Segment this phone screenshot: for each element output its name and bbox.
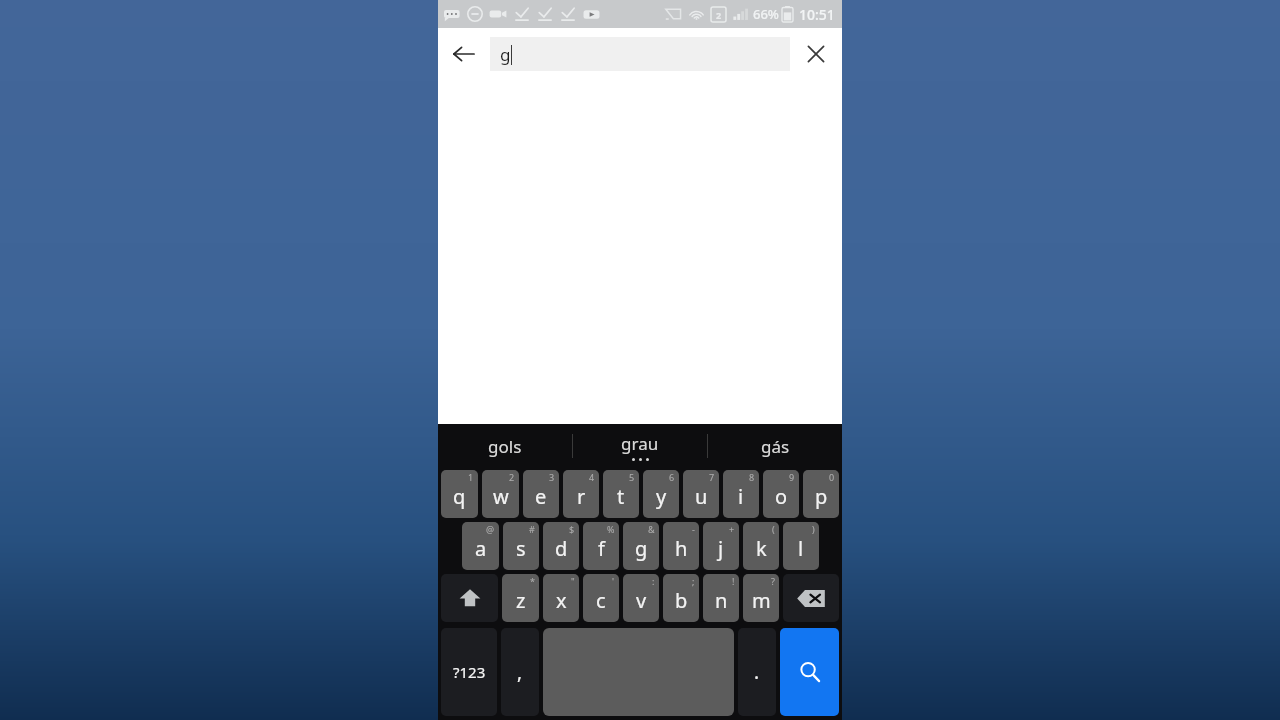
button[interactable]: n (703, 574, 739, 622)
button[interactable]: gás (708, 424, 842, 468)
button[interactable]: w (482, 470, 519, 518)
staticText: & (648, 523, 655, 535)
button[interactable]: ?123 (441, 628, 497, 716)
button[interactable]: r (563, 470, 599, 518)
button[interactable]: Backspace (783, 574, 839, 622)
staticText: i (738, 483, 744, 510)
staticText: ? (771, 575, 775, 587)
staticText: 1 (468, 471, 474, 483)
staticText: 7 (709, 471, 715, 483)
staticText: l (798, 535, 804, 562)
button[interactable]: j (703, 522, 739, 570)
button[interactable]: Clear (790, 28, 842, 80)
staticText: o (775, 483, 788, 510)
staticText: q (453, 483, 466, 510)
staticText: c (596, 587, 606, 614)
staticText: 0 (829, 471, 835, 483)
button[interactable]: , (501, 628, 539, 716)
button[interactable]: Shift (441, 574, 498, 622)
staticText: s (516, 535, 526, 562)
staticText: u (695, 483, 708, 510)
staticText: d (555, 535, 568, 562)
staticText: h (675, 535, 688, 562)
button[interactable]: t (603, 470, 639, 518)
button[interactable]: m (743, 574, 779, 622)
staticText: ! (732, 575, 735, 587)
button[interactable]: c (583, 574, 619, 622)
button[interactable]: u (683, 470, 719, 518)
button[interactable]: g (623, 522, 659, 570)
staticText: 4 (589, 471, 595, 483)
staticText: 2 (509, 471, 515, 483)
staticText: p (815, 483, 828, 510)
button[interactable]: i (723, 470, 759, 518)
button[interactable]: z (502, 574, 539, 622)
staticText: z (516, 587, 526, 614)
button[interactable]: v (623, 574, 659, 622)
staticText: ; (692, 575, 695, 587)
button[interactable]: o (763, 470, 799, 518)
staticText: g (635, 535, 648, 562)
button[interactable]: . (738, 628, 776, 716)
button[interactable]: Search (780, 628, 839, 716)
staticText: % (607, 523, 615, 535)
staticText: : (652, 575, 655, 587)
staticText: ) (812, 523, 815, 535)
button[interactable]: a (462, 522, 499, 570)
staticText: grau (621, 432, 659, 455)
staticText: * (530, 575, 535, 587)
staticText: gols (488, 435, 522, 458)
staticText: ?123 (453, 662, 486, 682)
button[interactable]: e (523, 470, 559, 518)
button[interactable]: y (643, 470, 679, 518)
button[interactable]: k (743, 522, 779, 570)
staticText: . (754, 659, 760, 685)
staticText: 6 (669, 471, 675, 483)
staticText: y (656, 483, 667, 510)
button[interactable]: Back (438, 28, 490, 80)
button[interactable]: s (503, 522, 539, 570)
staticText: b (675, 587, 688, 614)
button[interactable]: d (543, 522, 579, 570)
staticText: $ (569, 523, 575, 535)
button[interactable]: l (783, 522, 819, 570)
staticText: # (529, 523, 535, 535)
button[interactable]: f (583, 522, 619, 570)
button[interactable]: h (663, 522, 699, 570)
staticText: x (556, 587, 567, 614)
staticText: " (571, 575, 575, 587)
staticText: n (715, 587, 728, 614)
staticText: v (636, 587, 647, 614)
button[interactable]: gols (438, 424, 572, 468)
staticText: g (500, 43, 511, 66)
staticText: 9 (789, 471, 795, 483)
staticText: @ (486, 523, 495, 535)
button[interactable]: p (803, 470, 839, 518)
staticText: e (535, 483, 547, 510)
staticText: w (493, 483, 509, 510)
staticText: t (617, 483, 625, 510)
staticText: k (756, 535, 767, 562)
button[interactable]: x (543, 574, 579, 622)
staticText: , (517, 659, 523, 685)
staticText: 8 (749, 471, 755, 483)
staticText: 10:51 (799, 5, 835, 24)
button[interactable]: grau (573, 424, 707, 468)
staticText: + (729, 523, 735, 535)
staticText: ( (772, 523, 775, 535)
button[interactable]: b (663, 574, 699, 622)
button[interactable]: g (490, 37, 790, 71)
staticText: r (577, 483, 586, 510)
staticText: 66% (753, 5, 779, 23)
staticText: f (598, 535, 605, 562)
staticText: a (475, 535, 487, 562)
staticText: gás (761, 435, 790, 458)
staticText: m (752, 587, 771, 614)
button[interactable]: q (441, 470, 478, 518)
staticText: 3 (549, 471, 555, 483)
staticText: ' (612, 575, 615, 587)
button[interactable]: Space (543, 628, 734, 716)
staticText: 5 (629, 471, 635, 483)
staticText: 2 (716, 9, 722, 21)
staticText: j (718, 535, 724, 562)
